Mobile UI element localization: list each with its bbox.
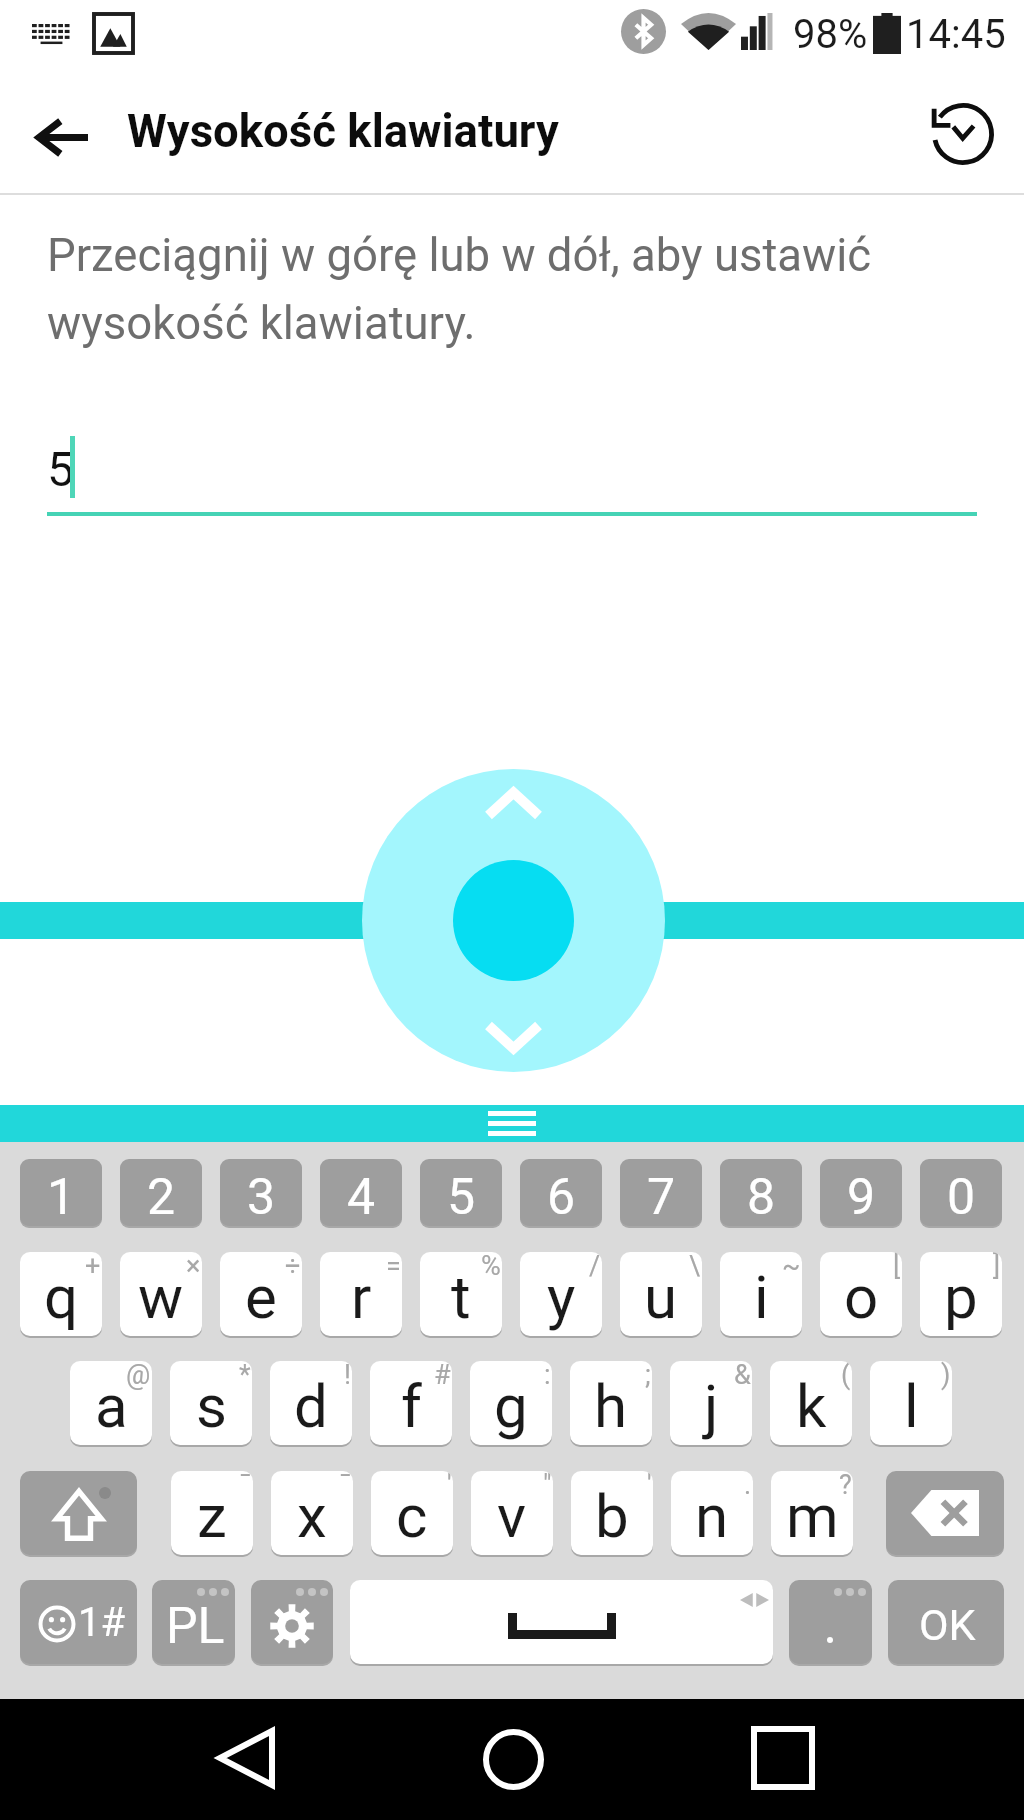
staticText: ' [447,1471,452,1501]
button[interactable]: 7 [620,1159,702,1226]
button[interactable]: 0 [920,1159,1002,1226]
button[interactable]: h [570,1361,652,1445]
button[interactable]: 9 [820,1159,902,1226]
button[interactable]: y [520,1252,602,1336]
staticText: h [594,1371,628,1441]
button[interactable]: v [471,1471,553,1555]
staticText: 1# [78,1599,126,1646]
staticText: t [451,1262,471,1332]
staticText: 9 [847,1168,876,1226]
button[interactable]: x [271,1471,353,1555]
staticText: q [44,1262,79,1332]
staticText: r [351,1262,372,1332]
staticText: i [754,1262,769,1332]
button[interactable]: p [920,1252,1002,1336]
staticText: 1 [47,1168,76,1226]
staticText: s [196,1371,227,1441]
staticText: × [186,1252,201,1282]
button[interactable] [789,1580,872,1664]
staticText: ÷ [285,1252,301,1282]
button[interactable]: s [170,1361,252,1445]
button[interactable]: Back [19,93,107,181]
staticText: u [644,1262,678,1332]
staticText: 5 [47,441,74,497]
button[interactable]: Keyboard settings [251,1580,333,1664]
staticText: " [543,1471,552,1501]
staticText: d [294,1371,328,1441]
button[interactable]: m [771,1471,853,1555]
button[interactable]: d [270,1361,352,1445]
button[interactable]: 4 [320,1159,402,1226]
button[interactable]: Drag to set keyboard height [362,769,665,1072]
button[interactable]: f [370,1361,452,1445]
button[interactable]: a [70,1361,152,1445]
button[interactable]: Shift [20,1471,137,1555]
button[interactable]: z [171,1471,253,1555]
button[interactable]: c [371,1471,453,1555]
staticText: c [396,1481,428,1551]
button[interactable]: 3 [220,1159,302,1226]
staticText: ( [841,1361,851,1391]
staticText: w [138,1262,184,1332]
staticText: 3 [247,1168,276,1226]
button[interactable]: e [220,1252,302,1336]
button[interactable]: Backspace [886,1471,1004,1555]
button[interactable]: 6 [520,1159,602,1226]
staticText: n [695,1481,729,1551]
staticText: = [386,1252,401,1282]
button[interactable]: k [770,1361,852,1445]
staticText: : [544,1361,551,1391]
staticText: + [85,1252,101,1282]
staticText: a [95,1371,128,1441]
staticText: PL [166,1597,225,1656]
button[interactable]: o [820,1252,902,1336]
staticText: e [245,1262,277,1332]
button[interactable]: b [571,1471,653,1555]
staticText: 14:45 [906,11,1006,58]
button[interactable]: t [420,1252,502,1336]
button[interactable]: Recent apps [728,1703,838,1813]
staticText: [ [893,1252,901,1282]
button[interactable]: u [620,1252,702,1336]
button[interactable]: j [670,1361,752,1445]
button[interactable]: 1 [20,1159,102,1226]
staticText: % [481,1252,501,1282]
button[interactable]: r [320,1252,402,1336]
staticText: 7 [647,1168,676,1226]
staticText: & [734,1361,751,1391]
button[interactable]: i [720,1252,802,1336]
button[interactable]: n [671,1471,753,1555]
staticText: y [547,1262,576,1332]
button[interactable]: g [470,1361,552,1445]
staticText: ! [344,1361,351,1391]
staticText: g [494,1371,528,1441]
staticText: # [434,1361,451,1391]
staticText: o [844,1262,879,1332]
button[interactable]: 8 [720,1159,802,1226]
staticText: 5 [447,1168,476,1226]
button[interactable]: OK [888,1580,1004,1664]
staticText: ; [645,1361,651,1391]
button[interactable]: 5 [420,1159,502,1226]
staticText: x [297,1481,327,1551]
button[interactable]: Restore default height [918,89,1008,179]
staticText: Przeciągnij w górę lub w dół, aby ustawi… [47,229,947,350]
staticText: 2 [147,1168,176,1226]
staticText: z [197,1481,227,1551]
button[interactable]: q [20,1252,102,1336]
staticText: 98% [793,11,868,58]
staticText: m [786,1481,839,1551]
staticText: k [796,1371,827,1441]
button[interactable]: l [870,1361,952,1445]
button[interactable]: Back [191,1703,301,1813]
button[interactable]: 1# [20,1580,137,1664]
staticText: ? [839,1471,852,1501]
button[interactable]: 2 [120,1159,202,1226]
staticText: @ [126,1361,151,1391]
button[interactable]: w [120,1252,202,1336]
staticText: ¯ [339,1471,352,1501]
staticText: ) [941,1361,951,1391]
button[interactable]: PL [152,1580,235,1664]
button[interactable]: Space [350,1580,773,1664]
button[interactable]: Home [458,1704,568,1814]
